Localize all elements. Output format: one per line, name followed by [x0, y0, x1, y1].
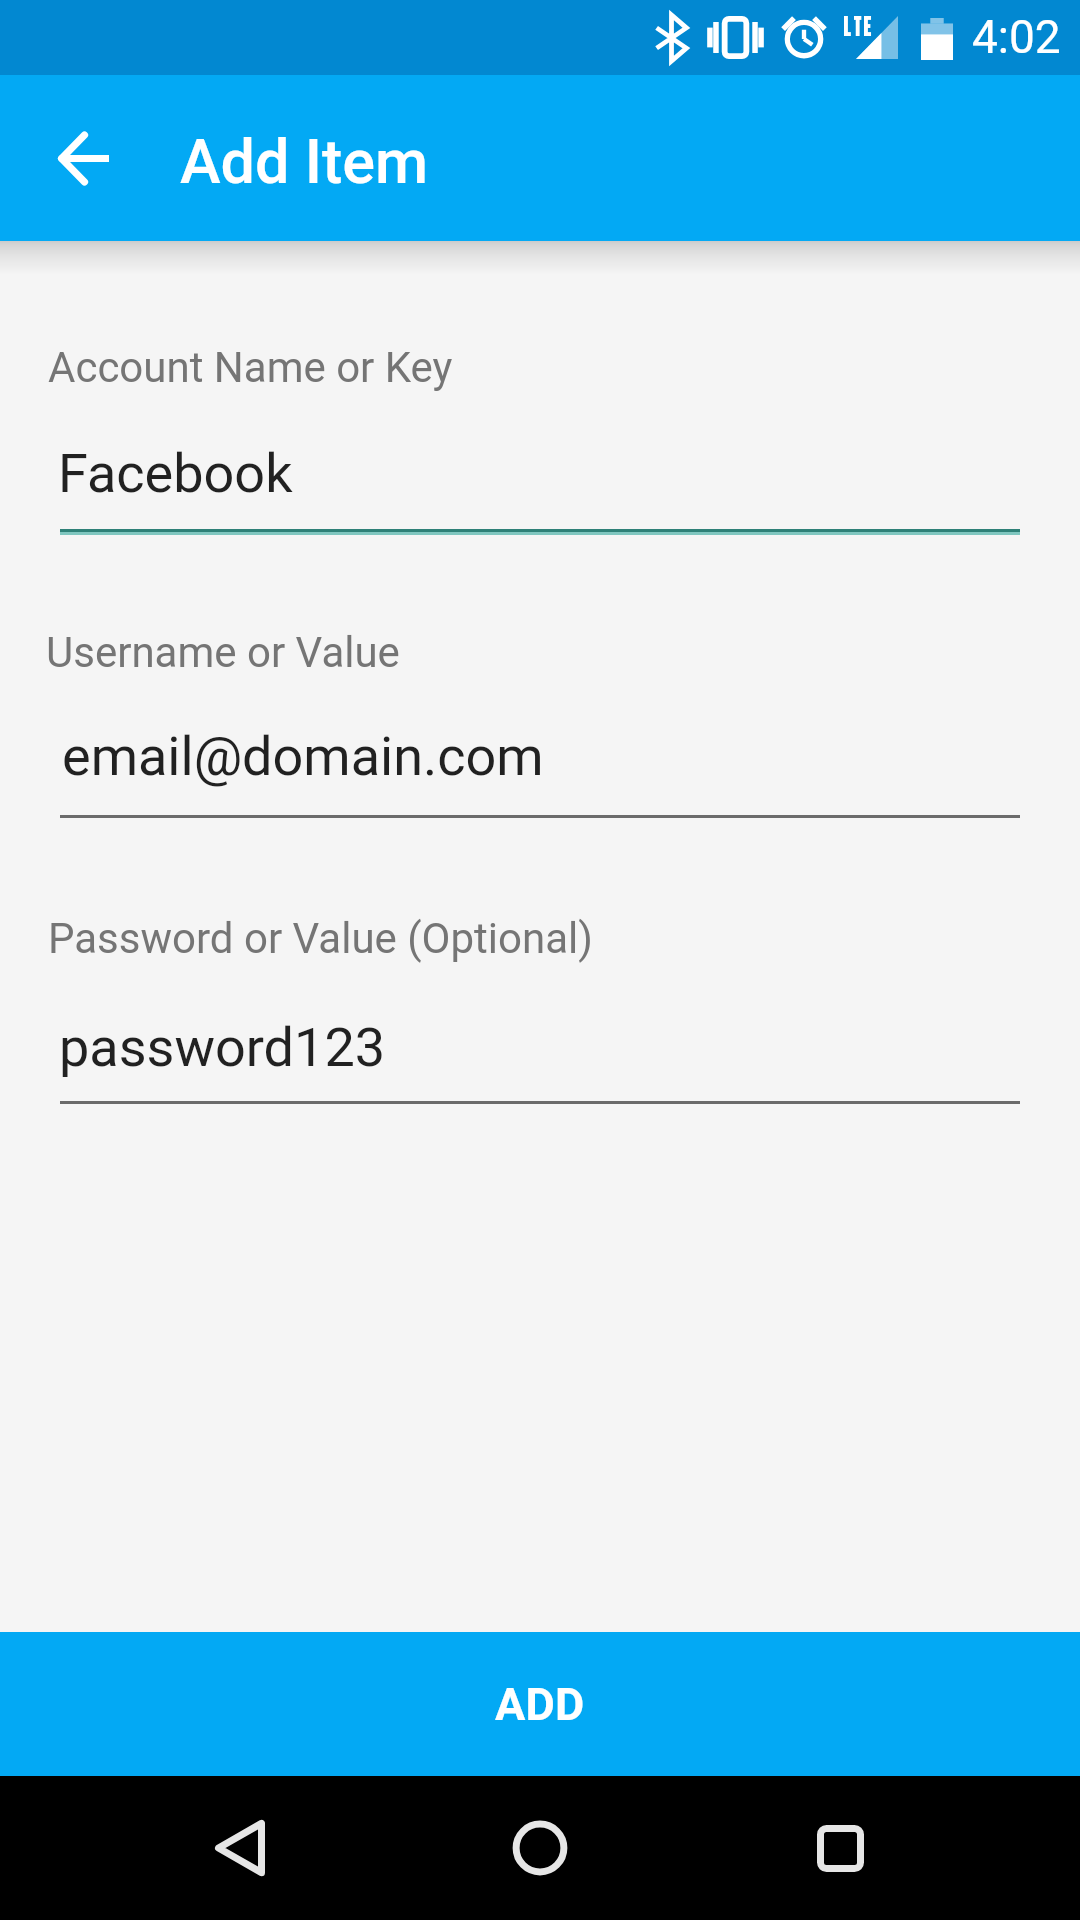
button[interactable]: Recent apps — [780, 1788, 900, 1908]
button[interactable]: Back — [180, 1788, 300, 1908]
staticText: Account Name or Key — [48, 343, 453, 392]
staticText: 4:02 — [972, 10, 1061, 64]
button[interactable]: ADD — [0, 1632, 1080, 1776]
button[interactable] — [48, 914, 1020, 1110]
staticText: Username or Value — [46, 628, 400, 677]
staticText: ADD — [495, 1678, 585, 1731]
staticText: Password or Value (Optional) — [48, 914, 593, 963]
staticText: Add Item — [180, 126, 429, 197]
staticText: Facebook — [58, 442, 293, 505]
staticText: password123 — [59, 1016, 386, 1079]
button[interactable] — [48, 628, 1020, 824]
staticText: email@domain.com — [62, 725, 544, 788]
button[interactable]: Navigate up — [35, 110, 131, 206]
button[interactable]: Home — [480, 1788, 600, 1908]
button[interactable] — [48, 343, 1020, 538]
